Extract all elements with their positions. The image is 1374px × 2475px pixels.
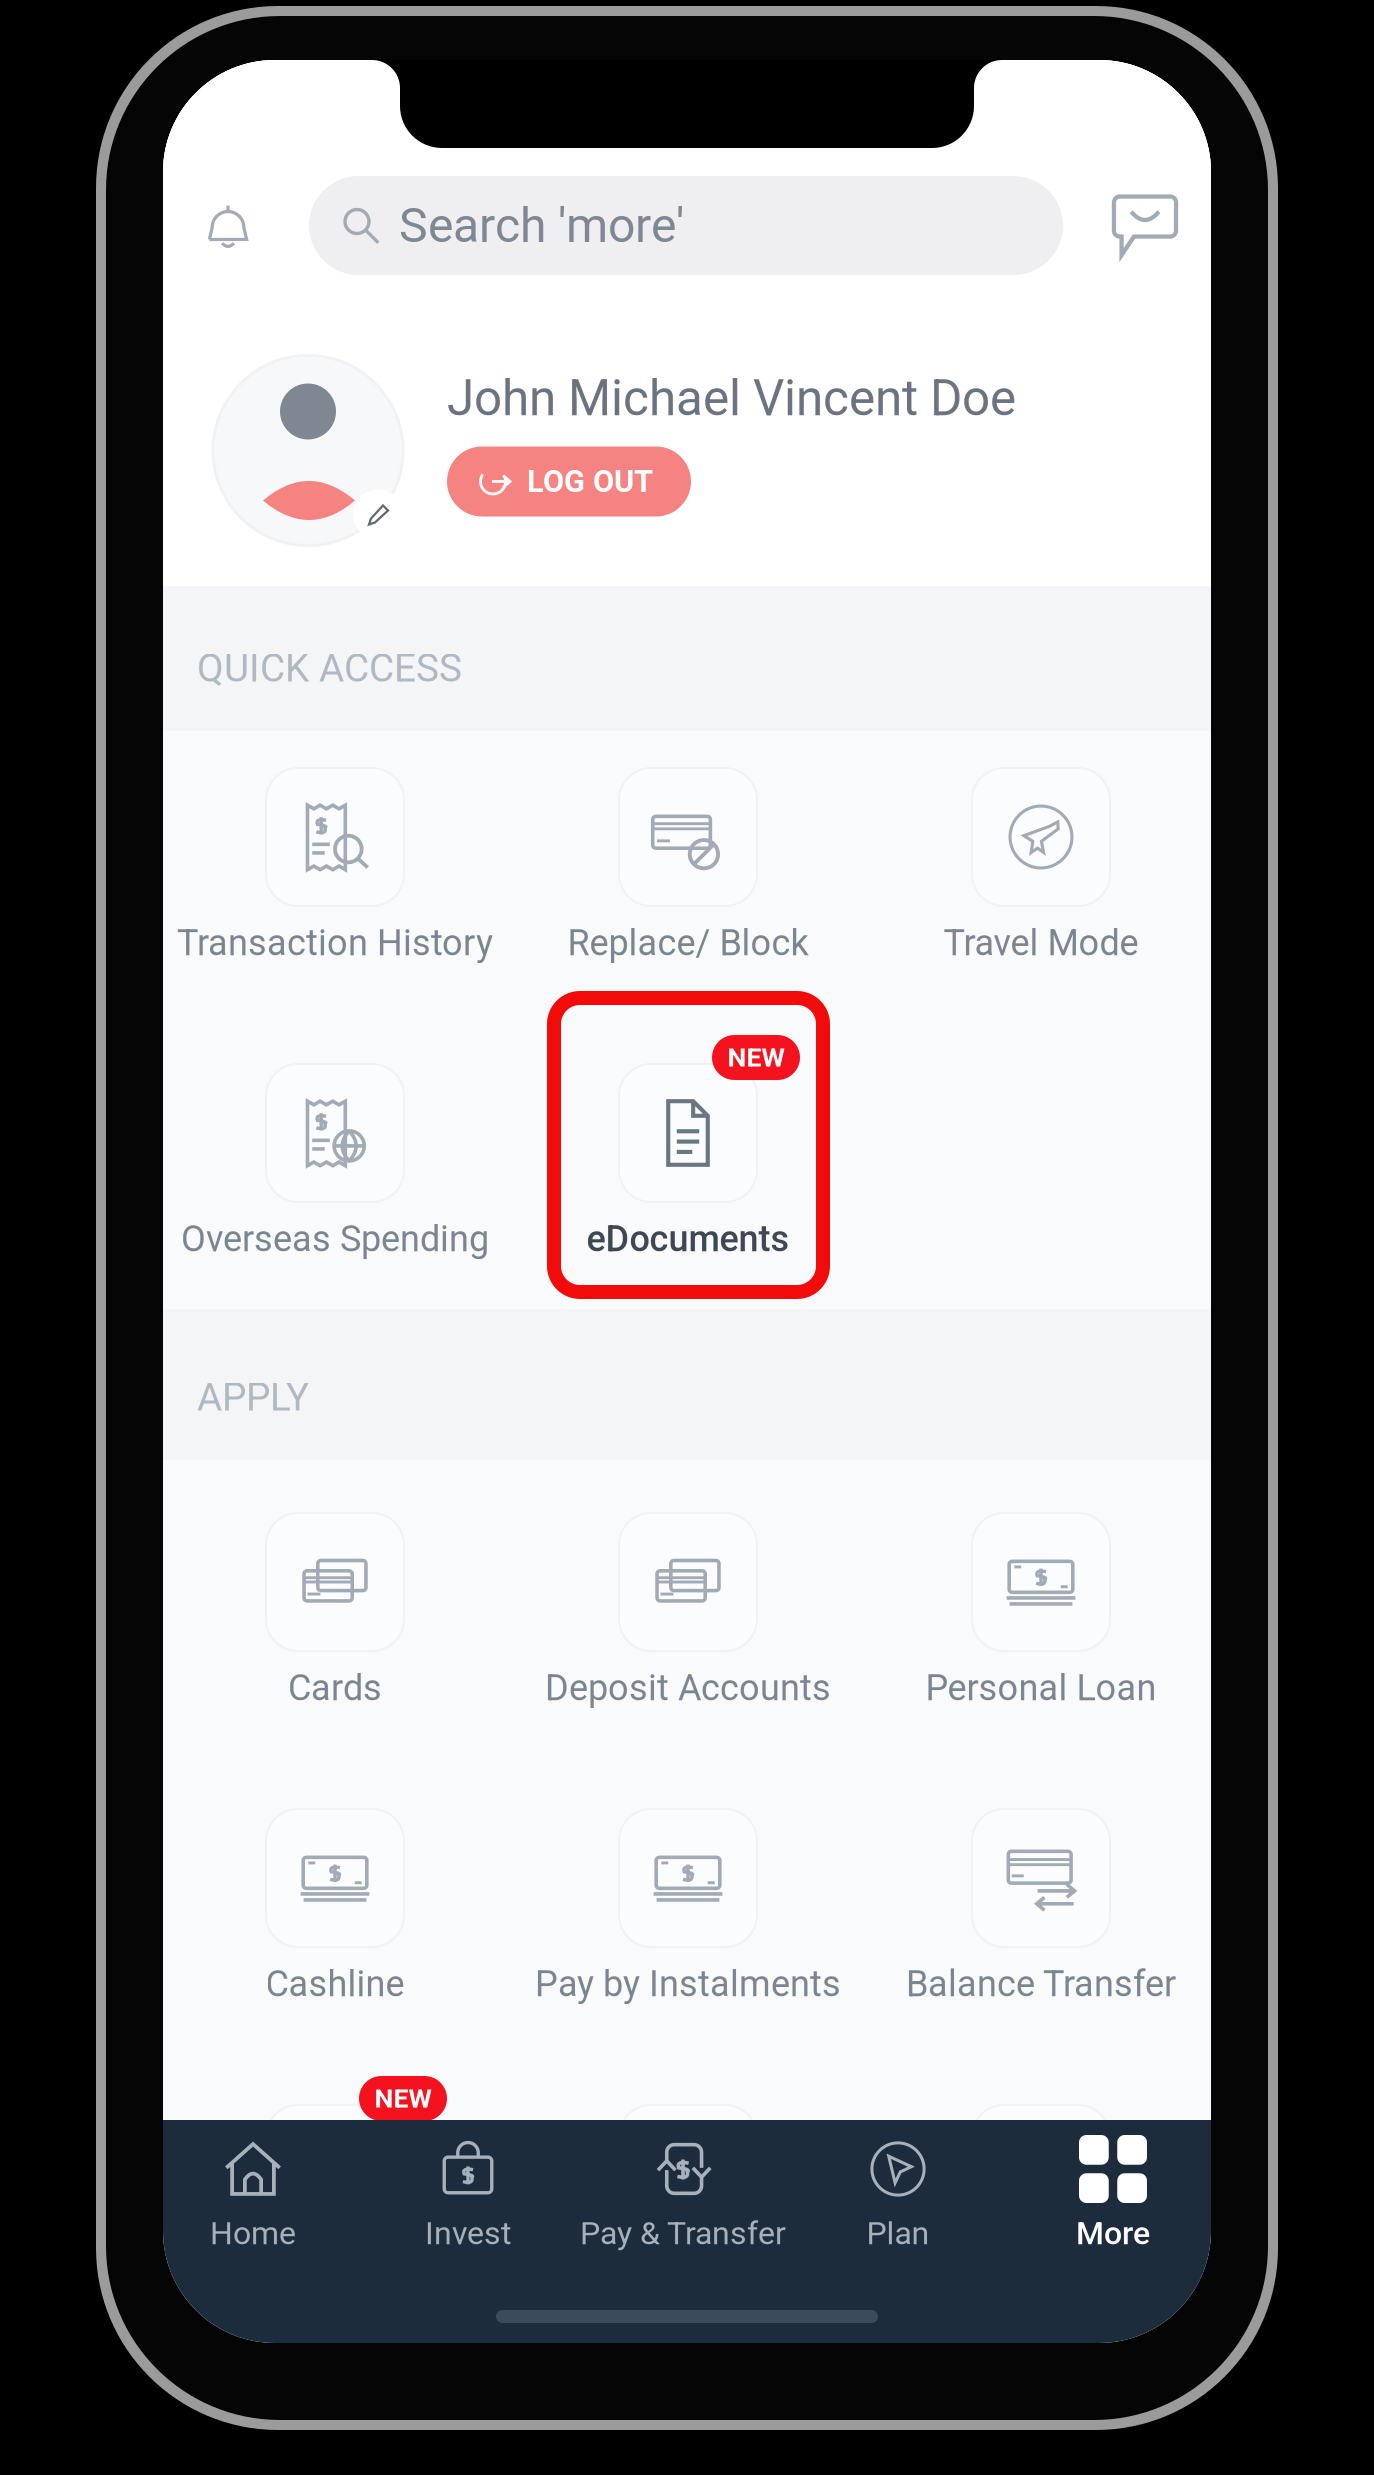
button[interactable] — [511, 2105, 864, 2301]
staticText: Pay & Transfer — [580, 2214, 786, 2252]
button[interactable]: Travel Mode — [864, 768, 1217, 964]
button[interactable]: Invest — [360, 2138, 575, 2252]
staticText: Personal Loan — [925, 1667, 1156, 1709]
button[interactable]: More — [1005, 2138, 1220, 2252]
staticText: Invest — [425, 2214, 511, 2252]
button[interactable]: Replace/ Block — [511, 768, 864, 964]
button[interactable]: Deposit Accounts — [511, 1513, 864, 1709]
button[interactable]: Cashline — [158, 1809, 511, 2005]
staticText: Cards — [288, 1667, 382, 1709]
button[interactable]: NEW — [158, 2105, 511, 2301]
staticText: Pay by Instalments — [535, 1963, 841, 2005]
staticText: John Michael Vincent Doe — [447, 370, 1016, 427]
staticText: QUICK ACCESS — [197, 646, 462, 691]
button[interactable]: LOG OUT — [447, 446, 691, 516]
staticText: Overseas Spending — [181, 1218, 489, 1260]
staticText: Deposit Accounts — [545, 1667, 831, 1709]
button[interactable]: Plan — [790, 2138, 1005, 2252]
button[interactable]: NEW — [511, 1064, 864, 1260]
staticText: Search 'more' — [399, 197, 684, 254]
staticText: Cashline — [265, 1963, 404, 2005]
staticText: Travel Mode — [943, 922, 1138, 964]
staticText: Replace/ Block — [567, 922, 808, 964]
staticText: Plan — [866, 2214, 929, 2252]
button[interactable]: Notifications — [193, 176, 263, 275]
staticText: APPLY — [197, 1375, 309, 1420]
staticText: NEW — [727, 1042, 784, 1073]
button[interactable]: Pay by Instalments — [511, 1809, 864, 2005]
button[interactable]: Pay & Transfer — [575, 2138, 790, 2252]
button[interactable] — [864, 2105, 1217, 2301]
button[interactable]: Cards — [158, 1513, 511, 1709]
button[interactable]: Edit profile photo — [210, 352, 406, 548]
staticText: More — [1076, 2214, 1150, 2252]
button[interactable]: Home — [145, 2138, 360, 2252]
staticText: NEW — [374, 2083, 431, 2114]
staticText: LOG OUT — [527, 463, 653, 499]
button[interactable]: Balance Transfer — [864, 1809, 1217, 2005]
staticText: eDocuments — [586, 1218, 789, 1260]
staticText: Balance Transfer — [906, 1963, 1176, 2005]
button[interactable]: Personal Loan — [864, 1513, 1217, 1709]
button[interactable]: Chat — [1109, 176, 1181, 275]
button[interactable]: Transaction History — [158, 768, 511, 964]
staticText: Home — [210, 2214, 296, 2252]
staticText: Transaction History — [177, 922, 493, 964]
button[interactable]: Overseas Spending — [158, 1064, 511, 1260]
